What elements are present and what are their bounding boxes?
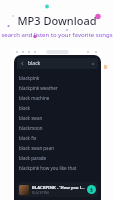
button[interactable]: blackmoon [14,123,101,133]
staticText: blackpink how you like that [19,165,77,171]
button[interactable]: blackpink how you like that [14,163,101,173]
button[interactable]: black parade [14,153,101,163]
button[interactable]: blackpink weather [14,83,101,93]
button[interactable]: blackpink [14,73,101,83]
staticText: search and listen to your favorite songs [1,31,113,39]
button[interactable]: Download [87,185,96,194]
staticText: black parade [19,155,47,161]
staticText: BLACKPINK [32,191,50,195]
staticText: blackpink weather [19,85,58,91]
staticText: black [19,105,31,111]
staticText: blackpink [19,75,40,81]
staticText: black fix [19,135,37,141]
button[interactable]: BLACKPINK - 'How you like t... [17,182,98,197]
other: Back [20,61,25,66]
button[interactable]: black swan paan [14,143,101,153]
staticText: black [28,60,91,67]
staticText: blackmoon [19,125,43,131]
staticText: black swan [19,115,43,121]
button[interactable]: black fix [14,133,101,143]
button[interactable]: Back [17,58,98,69]
button[interactable]: black [14,103,101,113]
button[interactable]: black swan [14,113,101,123]
button[interactable]: black machine [14,93,101,103]
other: Clear search [91,62,95,66]
staticText: black machine [19,95,50,101]
staticText: BLACKPINK - 'How you like t... [32,185,85,191]
staticText: MP3 Download [17,13,97,28]
staticText: black swan paan [19,145,54,151]
